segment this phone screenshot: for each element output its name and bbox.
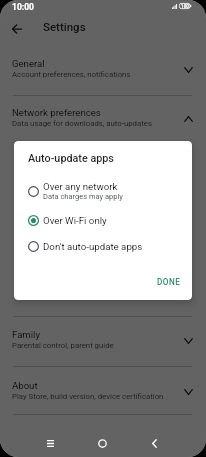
button[interactable]: Back: [140, 429, 169, 457]
staticText: Parental control, parent guide: [12, 341, 114, 350]
staticText: Don't auto-update apps: [43, 241, 143, 252]
staticText: DONE: [157, 277, 181, 287]
staticText: Over any network: [43, 181, 118, 192]
staticText: 100: [181, 4, 189, 9]
staticText: Auto-update apps: [28, 152, 114, 165]
button[interactable]: General: [0, 44, 206, 92]
staticText: Data usage for downloads, auto-updates: [12, 119, 152, 128]
staticText: Settings: [43, 20, 86, 33]
staticText: Over Wi-Fi only: [43, 215, 107, 226]
button[interactable]: Over any network: [14, 180, 192, 202]
staticText: Data charges may apply: [43, 192, 123, 201]
button[interactable]: Recent apps: [36, 429, 65, 457]
button[interactable]: Network preferences: [0, 93, 206, 141]
button[interactable]: DONE: [149, 271, 189, 293]
staticText: 10:00: [12, 2, 34, 12]
staticText: Play Store, build version, device certif…: [12, 392, 164, 401]
button[interactable]: Don't auto-update apps: [14, 237, 192, 255]
staticText: About: [12, 380, 38, 391]
button[interactable]: Over Wi-Fi only: [14, 211, 192, 229]
button[interactable]: About: [0, 366, 206, 414]
staticText: Network preferences: [12, 107, 101, 118]
staticText: Account preferences, notifications: [12, 70, 131, 79]
staticText: Family: [12, 329, 40, 340]
button[interactable]: Home: [88, 429, 117, 457]
button[interactable]: Family: [0, 315, 206, 363]
button[interactable]: Back: [3, 15, 30, 42]
staticText: General: [12, 58, 45, 69]
